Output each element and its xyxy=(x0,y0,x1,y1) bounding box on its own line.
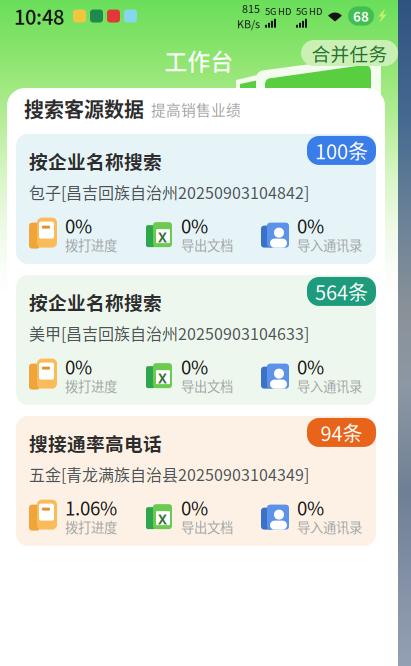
button[interactable]: 合并任务 xyxy=(301,40,398,66)
staticText: 94条 xyxy=(320,418,362,447)
staticText: 按企业名称搜索 xyxy=(29,147,162,174)
staticText: 导出文档 xyxy=(181,235,233,254)
staticText: 5G HD xyxy=(296,4,322,18)
staticText: 五金[青龙满族自治县20250903104349] xyxy=(29,462,309,486)
staticText: 导入通讯录 xyxy=(297,235,362,254)
staticText: 合并任务 xyxy=(311,39,387,66)
staticText: 拨打进度 xyxy=(65,376,117,395)
staticText: 564条 xyxy=(315,277,368,306)
staticText: 0% xyxy=(65,212,92,239)
staticText: 0% xyxy=(297,353,324,380)
staticText: 0% xyxy=(181,494,208,521)
staticText: X xyxy=(158,510,167,528)
staticText: 10:48 xyxy=(14,1,64,30)
staticText: 0% xyxy=(65,353,92,380)
staticText: 工作台 xyxy=(164,44,233,77)
button[interactable]: 按企业名称搜索 xyxy=(16,275,376,405)
staticText: 导入通讯录 xyxy=(297,376,362,395)
staticText: 导出文档 xyxy=(181,517,233,536)
staticText: 100条 xyxy=(315,136,368,165)
staticText: 5G HD xyxy=(265,4,291,18)
staticText: 提高销售业绩 xyxy=(151,99,241,120)
staticText: 拨打进度 xyxy=(65,235,117,254)
staticText: 815 xyxy=(242,1,260,16)
button[interactable]: 按企业名称搜索 xyxy=(16,134,376,264)
button[interactable]: 搜接通率高电话 xyxy=(16,416,376,546)
staticText: X xyxy=(158,369,167,387)
staticText: 搜接通率高电话 xyxy=(29,429,162,456)
staticText: 美甲[昌吉回族自治州20250903104633] xyxy=(29,321,309,345)
staticText: 1.06% xyxy=(65,494,117,521)
staticText: 包子[昌吉回族自治州20250903104842] xyxy=(29,180,309,204)
staticText: 0% xyxy=(297,212,324,239)
staticText: 导入通讯录 xyxy=(297,517,362,536)
staticText: X xyxy=(158,228,167,246)
staticText: 搜索客源数据 xyxy=(24,94,144,123)
staticText: 0% xyxy=(181,353,208,380)
staticText: KB/s xyxy=(237,16,260,31)
staticText: 导出文档 xyxy=(181,376,233,395)
staticText: 按企业名称搜索 xyxy=(29,288,162,315)
staticText: 拨打进度 xyxy=(65,517,117,536)
staticText: 68 xyxy=(353,6,369,26)
staticText: 0% xyxy=(297,494,324,521)
staticText: 0% xyxy=(181,212,208,239)
